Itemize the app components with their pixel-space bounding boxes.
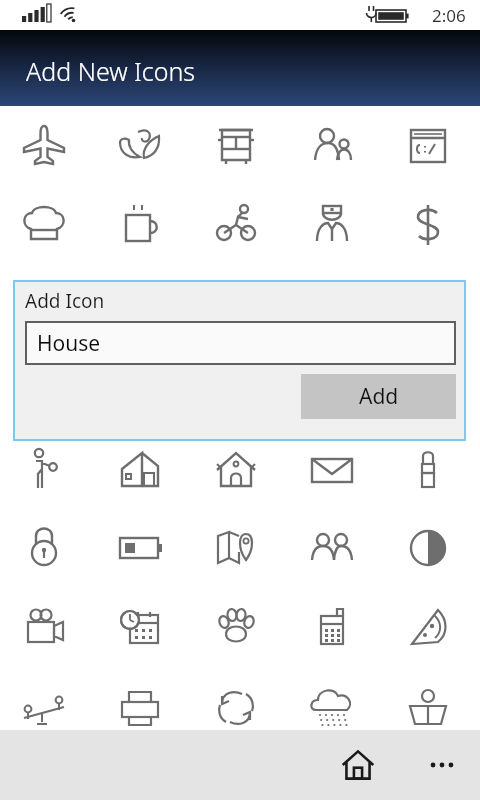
staticText: Add New Icons	[26, 54, 196, 88]
button[interactable]: Home	[330, 737, 386, 793]
staticText: House	[37, 329, 101, 358]
button[interactable]: House	[25, 321, 456, 365]
button[interactable]: More options	[416, 739, 468, 791]
staticText: 2:06	[432, 4, 466, 27]
button[interactable]: Add	[301, 374, 456, 419]
staticText: Add Icon	[25, 288, 105, 314]
staticText: Add	[359, 382, 399, 411]
